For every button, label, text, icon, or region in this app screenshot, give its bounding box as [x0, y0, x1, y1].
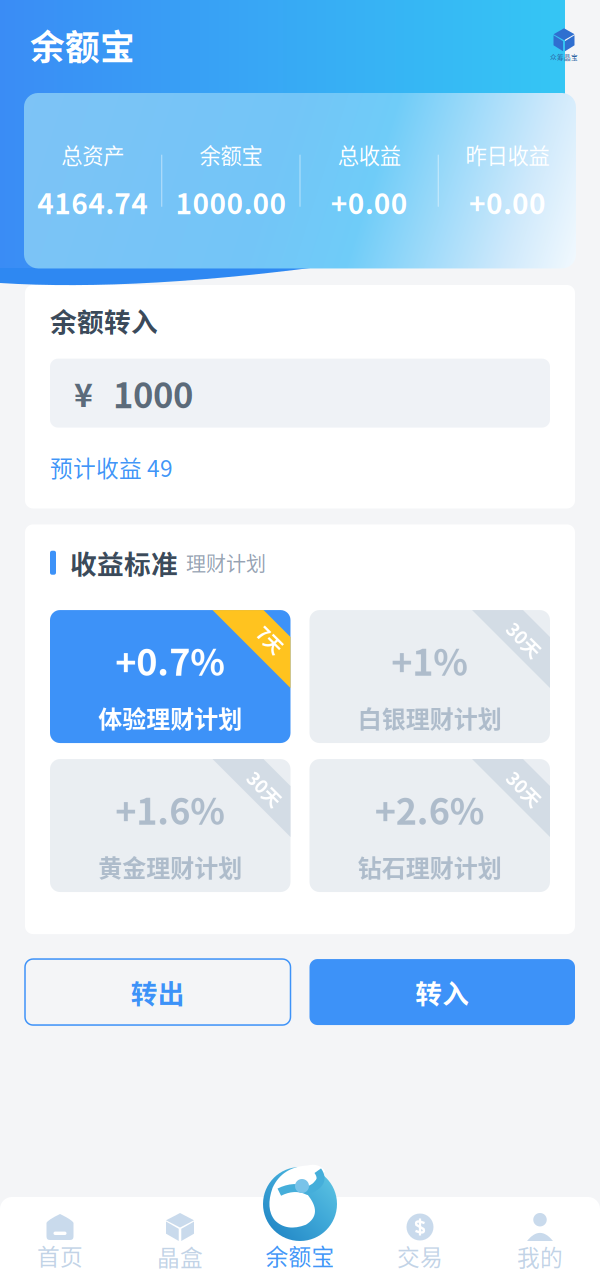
staticText: 30天 — [244, 775, 285, 802]
staticText: 余额宝 — [30, 20, 135, 70]
staticText: 理财计划 — [186, 548, 266, 577]
staticText: 余额转入 — [50, 301, 158, 340]
staticText: 30天 — [504, 626, 545, 653]
staticText: 转入 — [415, 973, 469, 1011]
button[interactable]: 首页 — [0, 1214, 120, 1272]
button[interactable]: 我的 — [480, 1213, 600, 1273]
staticText: 1000.00 — [175, 182, 286, 222]
staticText: 晶盒 — [157, 1240, 203, 1273]
staticText: +1.6% — [115, 783, 225, 835]
staticText: 余额宝 — [199, 139, 262, 170]
staticText: 总收益 — [338, 139, 401, 170]
staticText: 总资产 — [61, 139, 124, 170]
staticText: 钻石理财计划 — [358, 849, 502, 884]
staticText: 4164.74 — [37, 182, 148, 222]
staticText: 体验理财计划 — [98, 700, 242, 735]
staticText: +0.7% — [115, 634, 225, 686]
staticText: +2.6% — [375, 783, 485, 835]
staticText: ¥ — [74, 370, 93, 416]
staticText: 我的 — [517, 1240, 563, 1273]
staticText: 昨日收益 — [465, 139, 549, 170]
staticText: 7天 — [255, 626, 285, 653]
button[interactable]: 晶盒 — [120, 1213, 240, 1273]
staticText: +0.00 — [331, 182, 408, 222]
button[interactable]: 余额宝 — [240, 1214, 360, 1272]
staticText: 1000 — [113, 368, 193, 418]
staticText: 转出 — [131, 973, 185, 1011]
staticText: +1% — [391, 634, 468, 686]
staticText: 白银理财计划 — [358, 700, 502, 735]
button[interactable]: +1% — [309, 610, 550, 743]
button[interactable]: 交易 — [360, 1213, 480, 1272]
staticText: 余额宝 — [265, 1239, 334, 1272]
staticText: +0.00 — [469, 182, 546, 222]
staticText: 预计收益 49 — [50, 451, 173, 483]
button[interactable]: +0.7% — [50, 610, 290, 743]
button[interactable]: +1.6% — [50, 759, 290, 892]
staticText: 30天 — [504, 775, 545, 802]
button[interactable]: 转出 — [25, 959, 290, 1025]
staticText: 首页 — [37, 1239, 83, 1272]
button[interactable]: +2.6% — [309, 759, 550, 892]
staticText: 众筹晶宝 — [550, 52, 578, 62]
button[interactable]: 转入 — [309, 959, 575, 1025]
staticText: 交易 — [397, 1239, 443, 1272]
staticText: 黄金理财计划 — [98, 849, 242, 884]
staticText: 收益标准 — [70, 543, 178, 582]
